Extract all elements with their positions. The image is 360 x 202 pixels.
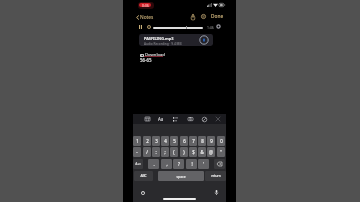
staticText: - — [136, 149, 138, 155]
button[interactable]: ; — [161, 147, 169, 157]
staticText: 0 — [220, 138, 223, 144]
staticText: $ — [192, 149, 195, 155]
button[interactable]: 3 — [152, 136, 160, 146]
button[interactable]: ( — [170, 147, 178, 157]
button[interactable]: Dictate — [213, 189, 219, 195]
staticText: ABC — [140, 174, 147, 178]
button[interactable]: : — [152, 147, 160, 157]
staticText: ) — [183, 149, 185, 155]
staticText: : — [155, 149, 157, 155]
staticText: & — [200, 149, 204, 155]
button[interactable]: 7 — [189, 136, 197, 146]
button[interactable]: 9 — [207, 136, 215, 146]
button[interactable]: Markup — [200, 115, 208, 123]
button[interactable]: Camera — [186, 115, 194, 123]
button[interactable]: 6 — [180, 136, 188, 146]
staticText: ( — [173, 149, 175, 155]
button[interactable]: 2 — [143, 136, 151, 146]
button[interactable]: space — [158, 171, 204, 181]
staticText: ? — [178, 161, 180, 167]
staticText: 1 — [136, 138, 139, 144]
button[interactable]: ) — [180, 147, 188, 157]
staticText: 1:46 — [207, 25, 214, 30]
button[interactable]: Delete — [214, 159, 225, 169]
staticText: space — [176, 174, 186, 179]
button[interactable]: Share — [189, 13, 196, 20]
button[interactable]: Pause — [138, 24, 143, 29]
button[interactable]: / — [143, 147, 151, 157]
button[interactable]: 1 — [133, 136, 141, 146]
staticText: Download — [145, 52, 165, 58]
button[interactable]: ? — [173, 159, 184, 169]
button[interactable]: 5 — [170, 136, 178, 146]
button[interactable]: " — [217, 147, 225, 157]
staticText: 8 — [201, 138, 204, 144]
button[interactable]: Download — [140, 52, 165, 58]
button[interactable]: Close — [214, 115, 222, 123]
staticText: ' — [203, 161, 204, 167]
staticText: 6 — [183, 138, 186, 144]
button[interactable]: ! — [186, 159, 197, 169]
button[interactable]: ' — [198, 159, 209, 169]
button[interactable]: Done — [211, 13, 224, 20]
staticText: 7 — [192, 138, 195, 144]
button[interactable]: Table — [143, 115, 151, 123]
button[interactable]: 4 — [161, 136, 169, 146]
staticText: . — [153, 161, 155, 167]
button[interactable]: @ — [207, 147, 215, 157]
button[interactable]: - — [133, 147, 141, 157]
button[interactable]: & — [198, 147, 206, 157]
button[interactable]: 0 — [217, 136, 225, 146]
staticText: ! — [191, 161, 193, 167]
staticText: ; — [164, 149, 166, 155]
button[interactable]: return — [205, 171, 226, 181]
staticText: Audio Recording · 9.4 MB — [144, 42, 182, 46]
button[interactable]: Checklist — [171, 115, 179, 123]
button[interactable]: Text format — [158, 116, 164, 122]
button[interactable]: Notes — [136, 13, 154, 21]
staticText: @ — [209, 149, 213, 155]
staticText: Notes — [140, 14, 154, 21]
button[interactable]: ABC — [134, 171, 153, 181]
button[interactable]: #+= — [133, 159, 143, 169]
staticText: Aa — [158, 116, 164, 122]
button[interactable]: Emoji — [140, 190, 146, 196]
staticText: 9 — [210, 138, 213, 144]
staticText: return — [211, 174, 221, 178]
staticText: Done — [211, 13, 224, 20]
button[interactable]: , — [161, 159, 172, 169]
button[interactable]: $ — [189, 147, 197, 157]
button[interactable]: . — [148, 159, 159, 169]
button[interactable]: PASFILING.mp3 — [139, 34, 213, 46]
staticText: #+= — [135, 162, 141, 166]
staticText: 5 — [173, 138, 176, 144]
staticText: 0:36 — [142, 3, 149, 7]
button[interactable]: Rewind 15 seconds — [146, 24, 151, 29]
staticText: , — [166, 161, 168, 167]
button[interactable]: 8 — [198, 136, 206, 146]
staticText: 2 — [146, 138, 149, 144]
staticText: " — [220, 149, 222, 155]
button[interactable]: More options — [200, 13, 207, 20]
staticText: / — [146, 149, 148, 155]
staticText: 56-65 — [140, 57, 152, 63]
staticText: PASFILING.mp3 — [144, 36, 174, 41]
staticText: 4 — [164, 138, 167, 144]
button[interactable]: Forward 15 seconds — [216, 24, 221, 29]
staticText: 3 — [155, 138, 158, 144]
